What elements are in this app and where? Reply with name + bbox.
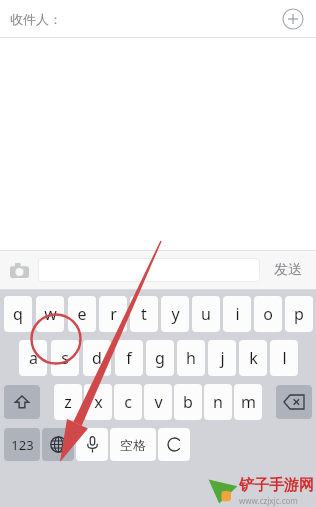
button[interactable]: m <box>234 384 262 420</box>
button[interactable]: t <box>130 296 158 332</box>
staticText: r <box>110 303 117 325</box>
staticText: i <box>235 303 240 325</box>
staticText: j <box>220 347 225 369</box>
staticText: f <box>126 347 132 369</box>
staticText: s <box>61 347 69 369</box>
staticText: g <box>155 347 165 369</box>
button[interactable]: l <box>270 340 298 376</box>
button[interactable]: 空格 <box>110 428 156 461</box>
button[interactable]: y <box>161 296 189 332</box>
button[interactable]: x <box>84 384 112 420</box>
button[interactable]: k <box>239 340 267 376</box>
button[interactable]: u <box>192 296 220 332</box>
button[interactable]: b <box>174 384 202 420</box>
button[interactable]: Camera <box>0 251 38 289</box>
button[interactable]: 发送 <box>260 251 316 289</box>
button[interactable]: Backspace <box>276 385 312 419</box>
staticText: h <box>186 347 196 369</box>
button[interactable]: z <box>54 384 82 420</box>
staticText: 空格 <box>120 437 146 453</box>
staticText: y <box>171 303 180 325</box>
button[interactable]: 123 <box>4 428 40 461</box>
button[interactable]: g <box>146 340 174 376</box>
button[interactable]: v <box>144 384 172 420</box>
staticText: n <box>213 391 223 413</box>
button[interactable]: Voice input <box>76 428 108 461</box>
button[interactable]: Shift <box>4 385 40 419</box>
staticText: w <box>44 303 57 325</box>
staticText: t <box>141 303 147 325</box>
button[interactable]: i <box>223 296 251 332</box>
button[interactable]: Add recipient <box>282 8 304 30</box>
button[interactable]: j <box>208 340 236 376</box>
staticText: q <box>13 303 23 325</box>
button[interactable]: Emoji <box>158 428 190 461</box>
staticText: m <box>241 391 256 413</box>
staticText: p <box>294 303 304 325</box>
staticText: u <box>201 303 211 325</box>
button[interactable]: c <box>114 384 142 420</box>
button[interactable]: h <box>177 340 205 376</box>
staticText: v <box>154 391 163 413</box>
button[interactable]: w <box>36 296 64 332</box>
button[interactable]: Switch keyboard <box>42 428 74 461</box>
button[interactable]: s <box>51 340 79 376</box>
button[interactable]: d <box>83 340 111 376</box>
staticText: l <box>282 347 287 369</box>
button[interactable]: e <box>68 296 96 332</box>
staticText: b <box>183 391 193 413</box>
button[interactable] <box>38 258 260 282</box>
button[interactable]: a <box>19 340 47 376</box>
staticText: a <box>29 347 38 369</box>
staticText: o <box>263 303 273 325</box>
staticText: k <box>249 347 258 369</box>
staticText: 发送 <box>274 261 302 279</box>
button[interactable]: f <box>115 340 143 376</box>
staticText: z <box>64 391 72 413</box>
button[interactable]: n <box>204 384 232 420</box>
staticText: e <box>77 303 87 325</box>
staticText: www.czjxjc.com <box>239 495 298 506</box>
button[interactable]: r <box>99 296 127 332</box>
staticText: d <box>92 347 102 369</box>
staticText: x <box>94 391 103 413</box>
staticText: c <box>124 391 132 413</box>
button[interactable]: o <box>254 296 282 332</box>
button[interactable]: p <box>285 296 313 332</box>
staticText: 123 <box>11 436 34 454</box>
staticText: 收件人： <box>10 11 62 27</box>
staticText: 铲子手游网 <box>239 476 314 495</box>
button[interactable]: q <box>4 296 32 332</box>
